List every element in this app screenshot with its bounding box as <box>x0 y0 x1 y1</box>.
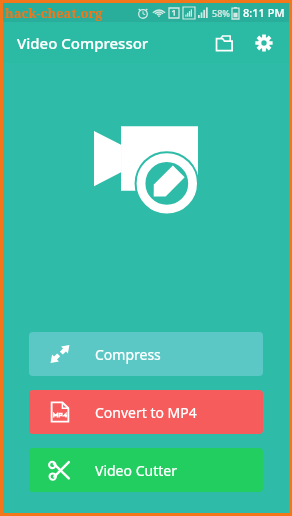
staticText: 8:11 PM <box>243 5 285 20</box>
button[interactable]: Settings <box>247 26 281 60</box>
staticText: Compress <box>95 345 161 364</box>
staticText: 58% <box>212 7 230 19</box>
staticText: Convert to MP4 <box>95 403 197 422</box>
button[interactable]: Video Cutter <box>29 448 263 492</box>
staticText: Video Compressor <box>17 33 149 53</box>
button[interactable]: Open folder <box>207 26 241 60</box>
button[interactable]: Compress <box>29 332 263 376</box>
staticText: Video Cutter <box>95 461 177 480</box>
staticText: hack-cheat.org <box>5 4 103 22</box>
button[interactable]: Convert to MP4 <box>29 390 263 434</box>
